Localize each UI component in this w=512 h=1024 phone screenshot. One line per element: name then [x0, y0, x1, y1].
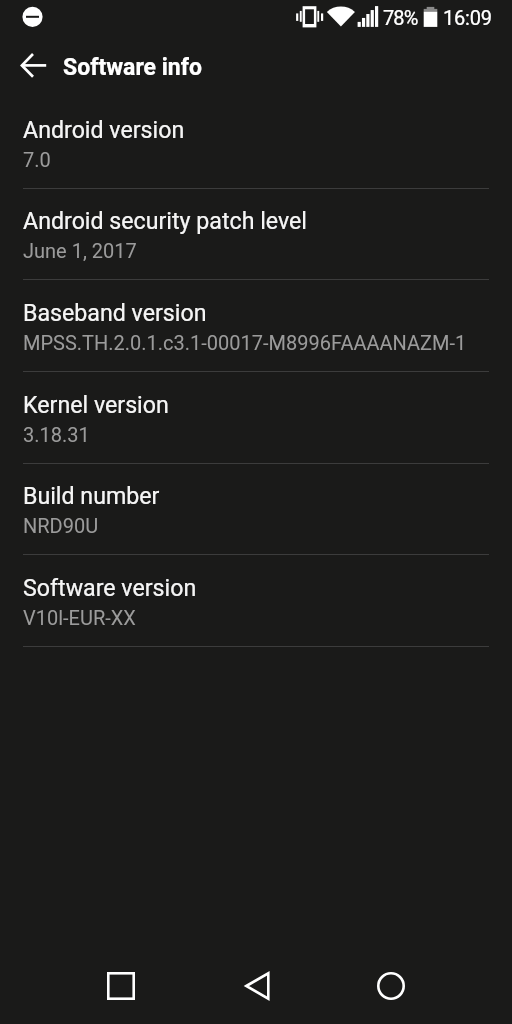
staticText: MPSS.TH.2.0.1.c3.1-00017-M8996FAAAANAZM-…	[23, 331, 467, 354]
staticText: 16:09	[443, 6, 492, 29]
button[interactable]: Navigate up	[8, 41, 56, 89]
staticText: 3.18.31	[23, 423, 90, 446]
button[interactable]: Android version	[0, 97, 512, 189]
button[interactable]: Build number	[0, 463, 512, 555]
staticText: 78%	[383, 6, 418, 29]
button[interactable]: Back	[214, 944, 302, 1024]
staticText: June 1, 2017	[23, 239, 137, 262]
staticText: Baseband version	[23, 299, 207, 326]
button[interactable]: Software version	[0, 555, 512, 647]
button[interactable]: Recent apps	[77, 944, 165, 1024]
button[interactable]: Kernel version	[0, 372, 512, 464]
staticText: 7.0	[23, 148, 51, 171]
button[interactable]: Baseband version	[0, 280, 512, 372]
staticText: V10l-EUR-XX	[23, 606, 136, 629]
staticText: Android security patch level	[23, 207, 308, 234]
button[interactable]: Android security patch level	[0, 188, 512, 280]
button[interactable]: Home	[347, 944, 435, 1024]
staticText: Build number	[23, 482, 160, 509]
staticText: Software version	[23, 574, 197, 601]
staticText: Android version	[23, 116, 185, 143]
staticText: Software info	[63, 54, 202, 81]
staticText: Kernel version	[23, 391, 169, 418]
staticText: NRD90U	[23, 514, 99, 537]
